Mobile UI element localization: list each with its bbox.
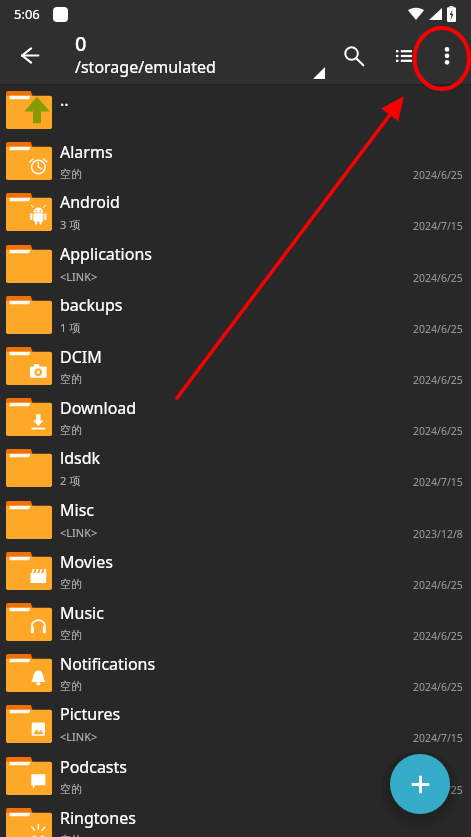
staticText: 1 项 — [60, 320, 81, 335]
staticText: Movies — [60, 551, 113, 573]
button[interactable]: DCIM — [0, 340, 471, 391]
staticText: <LINK> — [60, 729, 98, 744]
staticText: 2024/6/25 — [413, 783, 463, 797]
staticText: Podcasts — [60, 756, 127, 778]
button[interactable]: Android — [0, 186, 471, 237]
button[interactable]: Movies — [0, 545, 471, 596]
staticText: Notifications — [60, 653, 156, 675]
button[interactable]: Add — [390, 754, 450, 814]
staticText: Music — [60, 602, 104, 624]
button[interactable]: Ringtones — [0, 801, 471, 837]
button[interactable]: Search — [330, 32, 378, 80]
staticText: Applications — [60, 243, 152, 265]
staticText: 空的 — [60, 782, 82, 796]
staticText: 空的 — [60, 423, 82, 437]
staticText: 5:06 — [14, 5, 40, 23]
button[interactable]: Music — [0, 596, 471, 647]
staticText: 2023/12/8 — [413, 527, 463, 541]
staticText: 0 — [75, 30, 87, 57]
staticText: 空的 — [60, 577, 82, 591]
staticText: 2 项 — [60, 473, 81, 488]
button[interactable]: Download — [0, 391, 471, 442]
staticText: Download — [60, 397, 137, 419]
staticText: ldsdk — [60, 447, 101, 469]
staticText: DCIM — [60, 346, 102, 368]
button[interactable]: More options — [423, 32, 471, 80]
staticText: 2024/6/25 — [413, 373, 463, 387]
staticText: 2024/6/25 — [413, 629, 463, 643]
staticText: backups — [60, 294, 123, 316]
button[interactable]: Notifications — [0, 647, 471, 698]
button[interactable]: Back — [8, 33, 52, 77]
staticText: 2024/7/15 — [413, 731, 463, 745]
button[interactable]: View list — [380, 32, 428, 80]
staticText: 2024/6/25 — [413, 168, 463, 182]
staticText: 空的 — [60, 628, 82, 642]
button[interactable]: Misc — [0, 494, 471, 545]
staticText: 空的 — [60, 833, 82, 837]
staticText: <LINK> — [60, 269, 98, 284]
staticText: 2024/7/15 — [413, 219, 463, 233]
staticText: 2024/6/25 — [413, 322, 463, 336]
button[interactable]: Podcasts — [0, 750, 471, 801]
staticText: Pictures — [60, 703, 121, 725]
button[interactable]: .. — [0, 84, 471, 135]
staticText: Alarms — [60, 141, 113, 163]
staticText: 空的 — [60, 167, 82, 181]
staticText: 2024/6/25 — [413, 578, 463, 592]
button[interactable]: ldsdk — [0, 442, 471, 493]
staticText: /storage/emulated — [75, 56, 216, 78]
staticText: 空的 — [60, 372, 82, 386]
staticText: .. — [60, 89, 69, 111]
staticText: 2024/6/25 — [413, 271, 463, 285]
button[interactable]: backups — [0, 289, 471, 340]
staticText: 空的 — [60, 679, 82, 693]
button[interactable]: Applications — [0, 238, 471, 289]
staticText: 2024/6/25 — [413, 680, 463, 694]
button[interactable]: Pictures — [0, 698, 471, 749]
staticText: Misc — [60, 499, 94, 521]
staticText: 2024/6/25 — [413, 424, 463, 438]
staticText: <LINK> — [60, 525, 98, 540]
staticText: Android — [60, 191, 120, 213]
staticText: 2024/7/15 — [413, 475, 463, 489]
staticText: Ringtones — [60, 807, 136, 829]
button[interactable]: Alarms — [0, 135, 471, 186]
staticText: 3 项 — [60, 217, 81, 232]
